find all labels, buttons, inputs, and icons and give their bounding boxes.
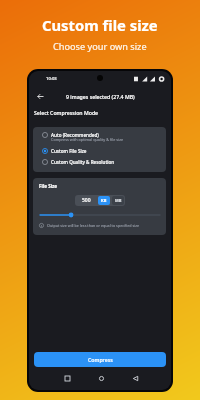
staticText: Compress with optimal quality & file siz…: [51, 137, 124, 142]
staticText: Custom File Size: [51, 148, 87, 154]
staticText: 10:03: [46, 76, 57, 82]
button[interactable]: Compress: [34, 352, 166, 367]
button[interactable]: Recents: [60, 371, 74, 385]
staticText: 9 images selected (27.4 MB): [66, 93, 135, 100]
button[interactable]: Back: [34, 90, 46, 102]
staticText: Choose your own size: [53, 40, 147, 53]
staticText: Auto (Recommended): [51, 132, 99, 138]
staticText: 500: [82, 197, 91, 204]
button[interactable]: Back: [128, 371, 142, 385]
staticText: Compress: [88, 356, 113, 363]
staticText: Custom file size: [42, 15, 158, 35]
staticText: MB: [115, 198, 122, 203]
button[interactable]: Auto (Recommended): [33, 129, 166, 141]
button[interactable]: File size slider: [39, 211, 160, 219]
staticText: Custom Quality & Resolution: [51, 159, 115, 165]
button[interactable]: Custom File Size: [33, 145, 166, 157]
button[interactable]: Home: [94, 371, 108, 385]
button[interactable]: MB: [112, 196, 124, 205]
button[interactable]: KB: [98, 196, 110, 205]
staticText: Select Compression Mode: [34, 109, 99, 116]
staticText: File Size: [39, 183, 58, 189]
staticText: KB: [101, 198, 107, 203]
button[interactable]: Custom Quality & Resolution: [33, 156, 166, 168]
staticText: Output size will be less than or equal t…: [47, 223, 140, 228]
